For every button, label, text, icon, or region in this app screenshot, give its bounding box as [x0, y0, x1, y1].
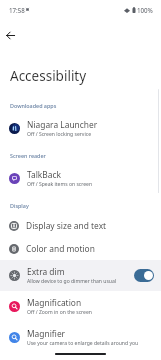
button[interactable]: Back: [3, 28, 17, 42]
staticText: Off / Zoom in on the screen: [27, 309, 92, 316]
staticText: Use your camera to enlarge details aroun…: [27, 340, 139, 347]
staticText: TalkBack: [27, 169, 62, 180]
staticText: Magnification: [27, 297, 82, 308]
staticText: Off / Screen locking service: [27, 131, 92, 138]
staticText: Extra dim: [27, 266, 65, 277]
staticText: Allow device to go dimmer than usual: [27, 278, 117, 285]
staticText: Display: [10, 202, 29, 209]
staticText: Screen reader: [10, 152, 46, 159]
button[interactable]: Niagara Launcher: [0, 116, 161, 140]
staticText: 17:58: [9, 6, 25, 14]
staticText: Accessibility: [10, 67, 87, 85]
button[interactable]: TalkBack: [0, 166, 161, 190]
staticText: Off / Speak items on screen: [27, 181, 93, 188]
staticText: Downloaded apps: [10, 102, 57, 109]
button[interactable]: Magnification: [0, 291, 161, 322]
button[interactable]: Extra dim toggle: [134, 269, 154, 282]
button[interactable]: Extra dim: [0, 260, 161, 291]
button[interactable]: Display size and text: [0, 214, 161, 237]
staticText: 100%: [137, 6, 153, 14]
staticText: Niagara Launcher: [27, 119, 98, 130]
button[interactable]: Magnifier: [0, 322, 161, 352]
staticText: Color and motion: [26, 243, 95, 254]
staticText: Display size and text: [26, 220, 107, 231]
button[interactable]: Color and motion: [0, 237, 161, 260]
staticText: Magnifier: [27, 328, 66, 339]
